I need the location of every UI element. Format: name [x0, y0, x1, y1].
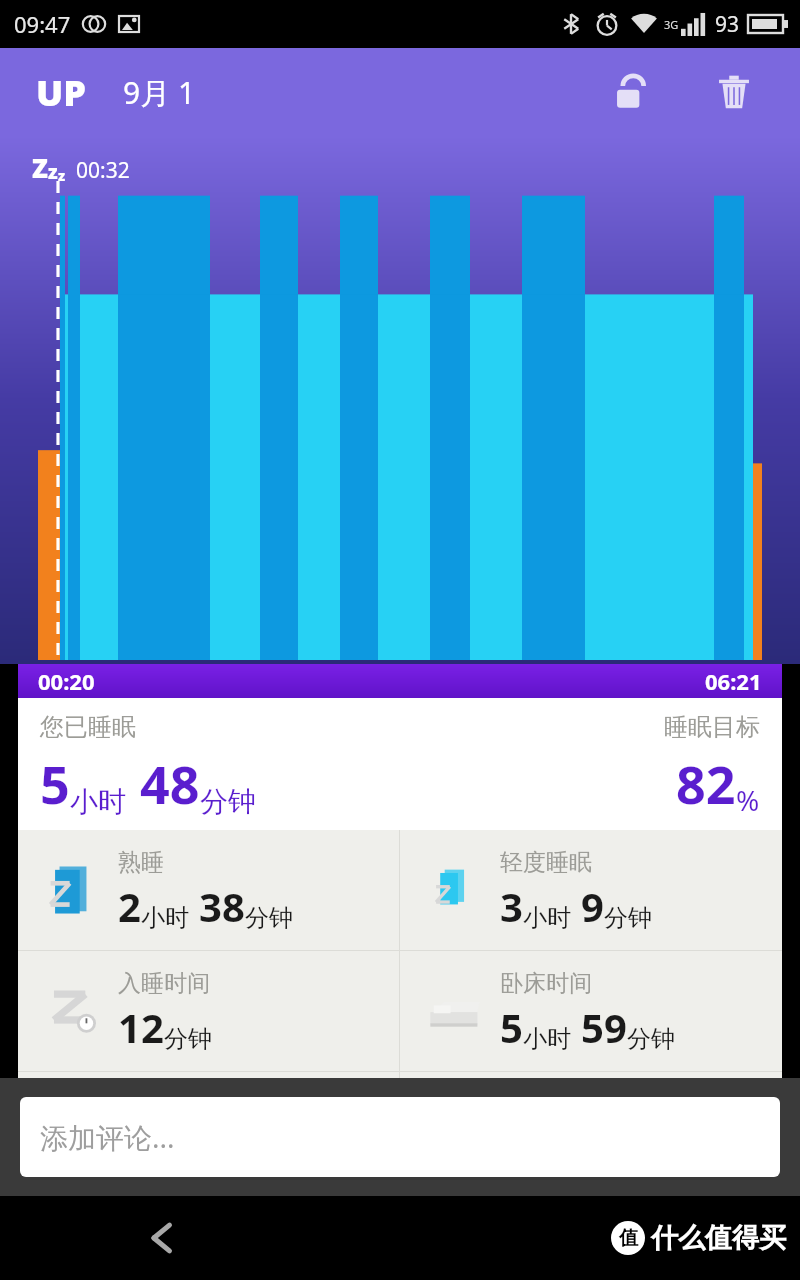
staticText: z	[48, 159, 58, 185]
staticText: 睡眠目标	[664, 712, 760, 742]
staticText: 82	[676, 748, 736, 819]
staticText: 2	[118, 879, 141, 933]
staticText: 分钟	[164, 1024, 212, 1054]
staticText: 小时	[141, 903, 189, 933]
staticText: 小时	[523, 903, 571, 933]
staticText: 06:21	[705, 666, 762, 696]
staticText: 分钟	[245, 903, 293, 933]
staticText: 您已睡眠	[40, 712, 136, 742]
staticText: 值	[619, 1226, 638, 1250]
staticText: 入睡时间	[118, 969, 210, 998]
staticText: 什么值得买	[651, 1221, 786, 1255]
button[interactable]: Delete	[704, 62, 764, 122]
staticText: 小时	[523, 1024, 571, 1054]
button[interactable]: 清醒时间	[18, 1072, 399, 1192]
staticText: 分钟	[627, 1024, 675, 1054]
staticText: 09:47	[14, 9, 71, 39]
staticText: 添加评论...	[40, 1118, 175, 1156]
staticText: 9月 1	[123, 72, 196, 113]
staticText: 38	[199, 879, 245, 933]
staticText: %	[736, 781, 760, 819]
button[interactable]: Back	[120, 1196, 204, 1280]
staticText: 5	[500, 1000, 523, 1054]
staticText: 12	[118, 1000, 164, 1054]
staticText: Z	[32, 150, 48, 185]
button[interactable]: Unlock	[600, 62, 660, 122]
staticText: 00:32	[76, 156, 130, 185]
button[interactable]: 醒来	[400, 1072, 782, 1192]
staticText: 00:20	[38, 666, 95, 696]
staticText: 分钟	[200, 784, 256, 819]
staticText: 3	[500, 879, 523, 933]
staticText: 59	[581, 1000, 627, 1054]
button[interactable]: 轻度睡眠	[400, 830, 782, 950]
button[interactable]: 卧床时间	[400, 951, 782, 1071]
button[interactable]: 熟睡	[18, 830, 399, 950]
staticText: 卧床时间	[500, 969, 592, 998]
staticText: 分钟	[604, 903, 652, 933]
staticText: 熟睡	[118, 848, 164, 877]
staticText: z	[58, 166, 66, 185]
button[interactable]: 入睡时间	[18, 951, 399, 1071]
staticText: 93	[715, 10, 740, 39]
staticText: 48	[140, 748, 200, 819]
staticText: 小时	[70, 784, 126, 819]
staticText: UP	[36, 68, 87, 117]
staticText: 5	[40, 748, 70, 819]
staticText: 9	[581, 879, 604, 933]
staticText: 清醒时间	[118, 1118, 210, 1147]
staticText: 轻度睡眠	[500, 848, 592, 877]
button[interactable]: 添加评论...	[20, 1097, 780, 1177]
staticText: 3G	[664, 17, 679, 32]
